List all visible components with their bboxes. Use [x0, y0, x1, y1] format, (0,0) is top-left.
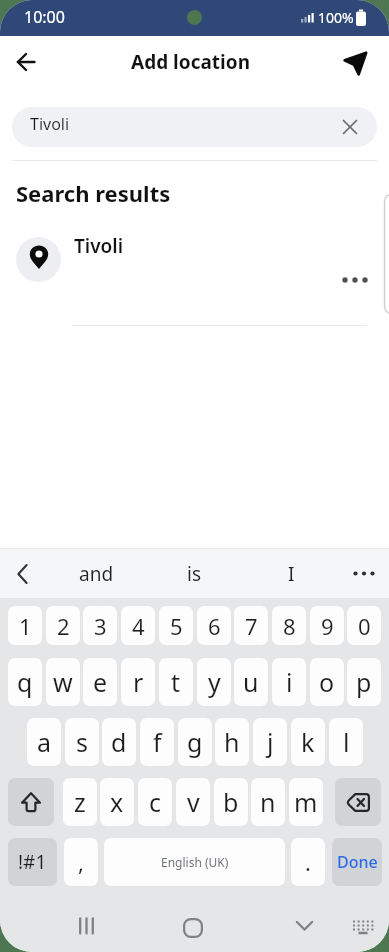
button[interactable]: v	[176, 778, 210, 826]
staticText: z	[74, 785, 86, 819]
staticText: !#1	[18, 849, 47, 875]
staticText: 100%	[318, 8, 354, 27]
button[interactable]: 0	[347, 606, 381, 645]
button[interactable]: j	[253, 718, 287, 766]
button[interactable]: m	[289, 778, 323, 826]
button[interactable]: 1	[8, 606, 42, 645]
button[interactable]	[284, 906, 324, 946]
button[interactable]: s	[65, 718, 99, 766]
button[interactable]: y	[197, 658, 231, 706]
button[interactable]	[350, 913, 376, 941]
staticText: h	[224, 725, 240, 759]
button[interactable]	[12, 107, 377, 147]
button[interactable]: o	[310, 658, 344, 706]
button[interactable]: q	[8, 658, 42, 706]
button[interactable]	[66, 905, 107, 946]
staticText: x	[110, 785, 124, 819]
staticText: 7	[245, 611, 258, 641]
staticText: u	[243, 665, 259, 699]
button[interactable]: 5	[159, 606, 193, 645]
button[interactable]: 3	[83, 606, 117, 645]
button[interactable]: .	[291, 838, 325, 886]
button[interactable]: x	[100, 778, 134, 826]
button[interactable]: !#1	[8, 838, 57, 886]
staticText: 1	[19, 611, 32, 641]
staticText: m	[294, 785, 318, 819]
button[interactable]: Tivoli	[0, 228, 389, 325]
button[interactable]: 8	[272, 606, 306, 645]
staticText: 10:00	[24, 6, 65, 28]
button[interactable]: 4	[121, 606, 155, 645]
button[interactable]: z	[63, 778, 97, 826]
staticText: o	[319, 665, 335, 699]
staticText: g	[187, 725, 203, 759]
button[interactable]: p	[347, 658, 381, 706]
staticText: ,	[78, 847, 84, 877]
staticText: t	[171, 665, 181, 699]
staticText: 8	[283, 611, 296, 641]
button[interactable]: 9	[310, 606, 344, 645]
button[interactable]: Done	[332, 838, 382, 886]
staticText: Tivoli	[74, 233, 124, 259]
button[interactable]: t	[159, 658, 193, 706]
button[interactable]	[8, 778, 54, 826]
staticText: b	[223, 785, 239, 819]
button[interactable]: d	[102, 718, 136, 766]
button[interactable]: c	[138, 778, 172, 826]
staticText: v	[187, 785, 200, 819]
staticText: y	[208, 665, 221, 699]
staticText: a	[37, 725, 52, 759]
button[interactable]	[6, 556, 38, 592]
button[interactable]: k	[291, 718, 325, 766]
button[interactable]	[336, 43, 376, 83]
button[interactable]: f	[140, 718, 174, 766]
button[interactable]	[6, 42, 46, 82]
button[interactable]	[335, 778, 381, 826]
button[interactable]: 2	[46, 606, 80, 645]
button[interactable]: a	[27, 718, 61, 766]
button[interactable]	[333, 265, 377, 295]
staticText: j	[267, 725, 274, 759]
button[interactable]: ,	[64, 838, 98, 886]
staticText: q	[17, 665, 33, 699]
button[interactable]	[347, 556, 381, 590]
button[interactable]: 7	[234, 606, 268, 645]
staticText: e	[93, 665, 108, 699]
button[interactable]: h	[215, 718, 249, 766]
button[interactable]: n	[251, 778, 285, 826]
staticText: c	[149, 785, 162, 819]
staticText: w	[53, 665, 73, 699]
staticText: r	[133, 665, 144, 699]
button[interactable]: i	[272, 658, 306, 706]
staticText: 6	[208, 611, 221, 641]
button[interactable]: b	[214, 778, 248, 826]
button[interactable]: 6	[197, 606, 231, 645]
staticText: Add location	[131, 49, 250, 75]
staticText: .	[305, 847, 311, 877]
staticText: Search results	[16, 178, 171, 208]
staticText: d	[111, 725, 127, 759]
staticText: l	[343, 725, 350, 759]
staticText: s	[76, 725, 88, 759]
staticText: Done	[337, 851, 378, 873]
staticText: and	[79, 561, 114, 587]
button[interactable]: u	[234, 658, 268, 706]
staticText: English (UK)	[161, 854, 229, 870]
button[interactable]: r	[121, 658, 155, 706]
staticText: Tivoli	[30, 113, 70, 135]
staticText: f	[153, 725, 162, 759]
staticText: 4	[132, 611, 145, 641]
button[interactable]: e	[83, 658, 117, 706]
button[interactable]: English (UK)	[104, 838, 285, 886]
staticText: is	[187, 561, 202, 587]
staticText: 0	[358, 611, 371, 641]
staticText: n	[260, 785, 276, 819]
button[interactable]: l	[329, 718, 363, 766]
button[interactable]	[173, 908, 213, 948]
staticText: i	[286, 665, 293, 699]
staticText: 9	[321, 611, 334, 641]
button[interactable]: w	[46, 658, 80, 706]
button[interactable]: g	[178, 718, 212, 766]
staticText: 2	[57, 611, 70, 641]
staticText: I	[288, 561, 295, 587]
